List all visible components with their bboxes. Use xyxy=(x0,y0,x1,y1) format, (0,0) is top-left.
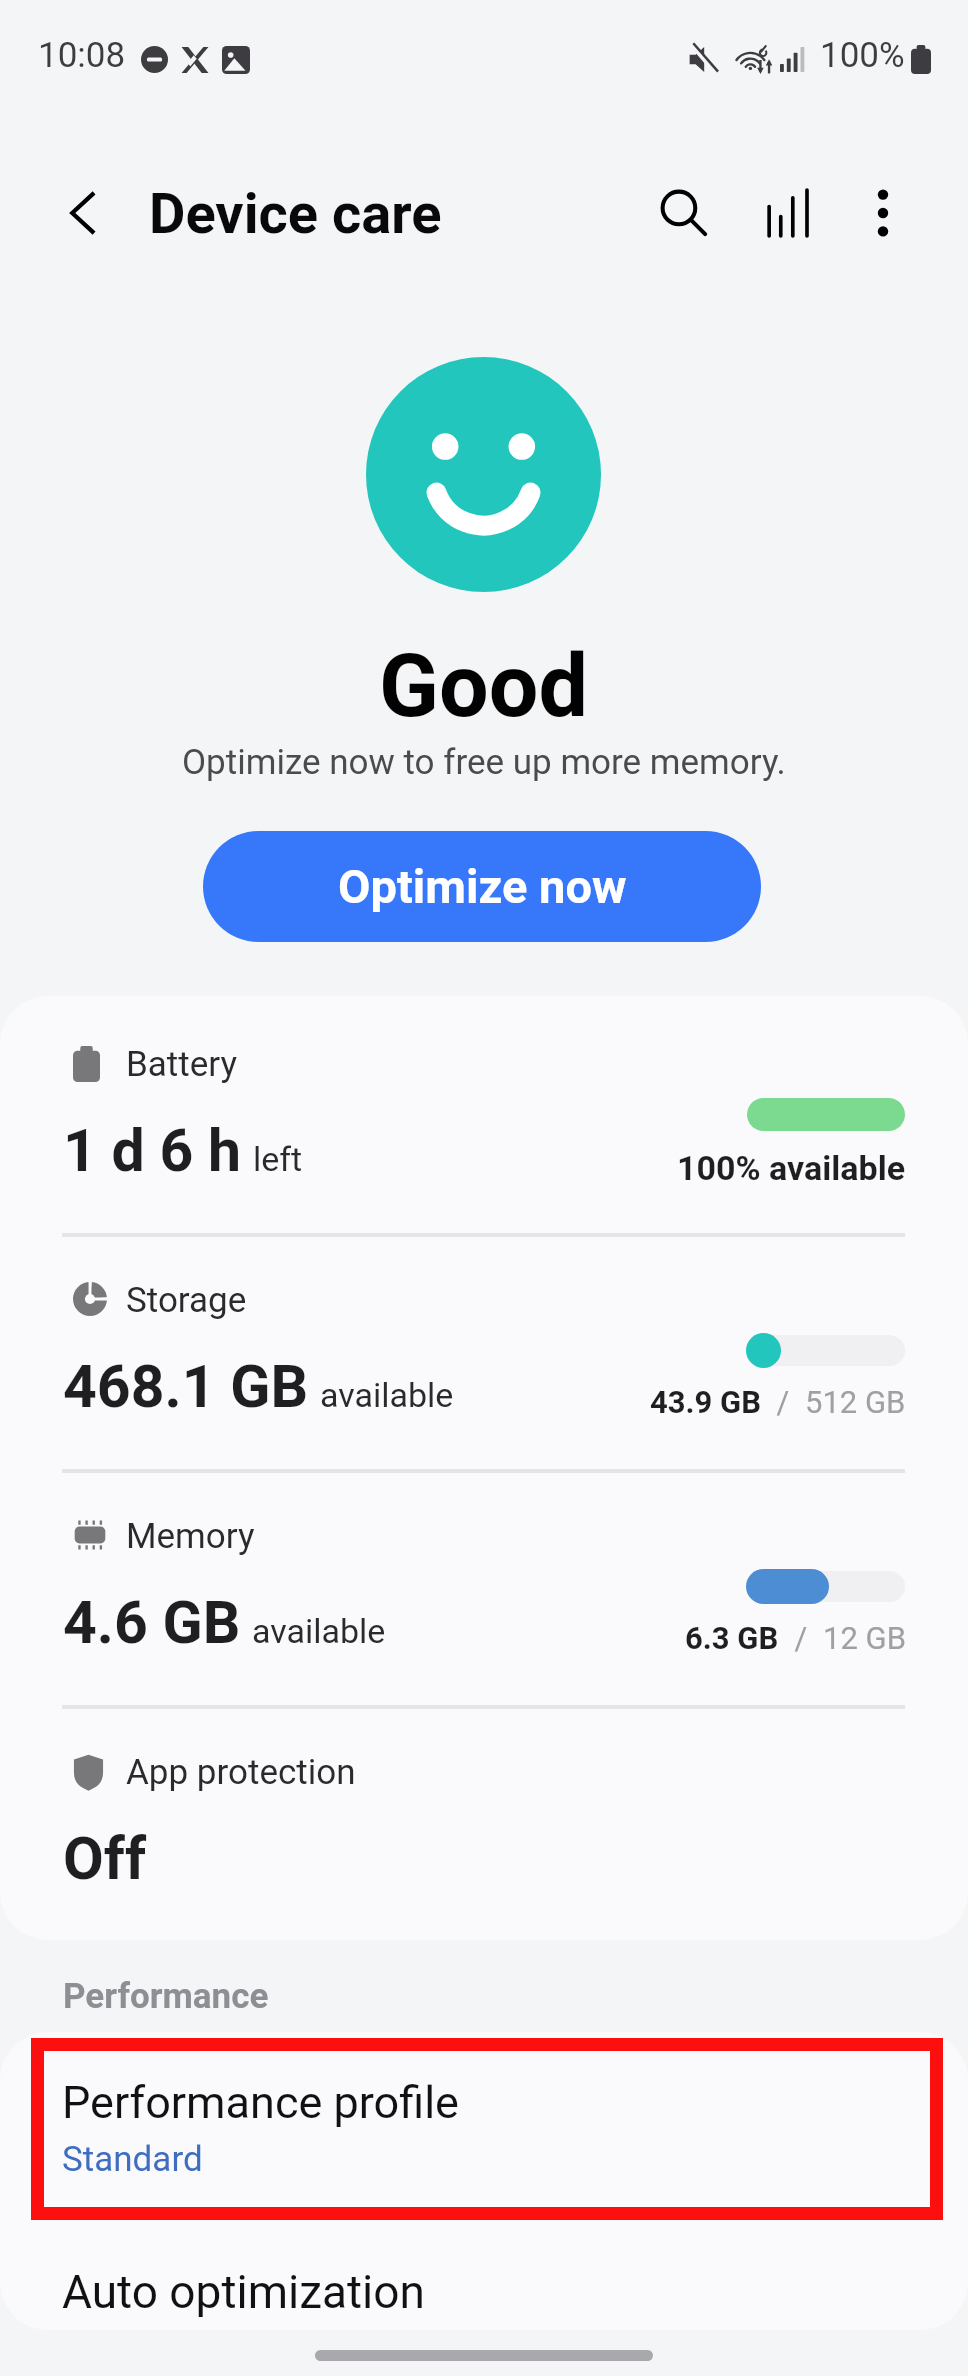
staticText: Performance xyxy=(63,1976,269,2017)
staticText: Device care xyxy=(149,181,442,247)
button[interactable]: Memory xyxy=(0,1468,968,1704)
staticText: Standard xyxy=(62,2139,203,2180)
staticText: 10:08 xyxy=(38,35,126,76)
button[interactable]: Battery xyxy=(0,996,968,1232)
staticText: 6.3 GB xyxy=(685,1620,779,1656)
staticText: 43.9 GB xyxy=(650,1384,761,1420)
staticText: 100% available xyxy=(677,1148,906,1188)
staticText: Good xyxy=(379,634,589,737)
button[interactable]: Usage statistics xyxy=(744,169,832,257)
button[interactable]: App protection xyxy=(0,1704,968,1940)
button[interactable]: Optimize now xyxy=(203,831,761,942)
staticText: Optimize now to free up more memory. xyxy=(182,742,786,783)
staticText: Optimize now xyxy=(338,859,627,914)
staticText: Performance profile xyxy=(62,2076,459,2129)
staticText: 512 GB xyxy=(805,1384,906,1420)
staticText: 100% xyxy=(820,35,905,76)
button[interactable]: Navigate up xyxy=(46,175,122,251)
button[interactable]: Auto optimization xyxy=(0,2214,968,2330)
staticText: / xyxy=(761,1384,805,1420)
staticText: Storage xyxy=(126,1280,247,1321)
staticText: Battery xyxy=(126,1044,238,1085)
staticText: / xyxy=(779,1620,823,1656)
button[interactable]: More options xyxy=(839,169,927,257)
staticText: Off xyxy=(63,1824,147,1893)
button[interactable]: Storage xyxy=(0,1232,968,1468)
staticText: available xyxy=(252,1611,386,1651)
staticText: 12 GB xyxy=(823,1620,906,1656)
staticText: 1 d 6 h xyxy=(63,1116,242,1185)
staticText: 468.1 GB xyxy=(63,1352,309,1421)
button[interactable]: Performance profile xyxy=(0,2032,968,2214)
staticText: left xyxy=(253,1139,303,1179)
staticText: Auto optimization xyxy=(62,2265,425,2319)
staticText: App protection xyxy=(126,1752,356,1793)
staticText: 4.6 GB xyxy=(63,1588,241,1657)
button[interactable]: Search xyxy=(640,169,728,257)
staticText: available xyxy=(320,1375,454,1415)
staticText: Memory xyxy=(126,1516,255,1557)
